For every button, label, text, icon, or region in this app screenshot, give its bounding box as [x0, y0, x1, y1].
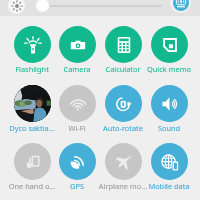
button[interactable]: One hand o... [9, 143, 55, 191]
staticText: GPS [50, 181, 104, 191]
button[interactable]: Flashlight [9, 26, 55, 74]
staticText: One hand o... [5, 181, 59, 191]
staticText: Sound [142, 123, 196, 133]
button[interactable]: Mobile data [146, 143, 192, 191]
button[interactable]: Brightness level [36, 0, 49, 12]
button[interactable]: Auto-rotate [100, 85, 146, 133]
button[interactable]: Brightness [8, 0, 25, 14]
button[interactable]: Calculator [100, 26, 146, 74]
staticText: Mobile data [142, 181, 196, 191]
staticText: Airplane mo... [96, 181, 150, 191]
staticText: Dyco saktia... [5, 123, 59, 133]
staticText: Auto-rotate [96, 123, 150, 133]
button[interactable]: Quick memo [146, 26, 192, 74]
button[interactable]: GPS [54, 143, 100, 191]
staticText: Calculator [96, 64, 150, 74]
button[interactable]: Camera [54, 26, 100, 74]
button[interactable]: Dyco saktia... [9, 85, 55, 133]
button[interactable]: Auto brightness [170, 0, 191, 13]
staticText: Camera [50, 64, 104, 74]
staticText: Flashlight [5, 64, 59, 74]
staticText: Wi-Fi [50, 123, 104, 133]
staticText: Quick memo [142, 64, 196, 74]
button[interactable]: Airplane mo... [100, 143, 146, 191]
button[interactable]: Wi-Fi [54, 85, 100, 133]
button[interactable]: Sound [146, 85, 192, 133]
